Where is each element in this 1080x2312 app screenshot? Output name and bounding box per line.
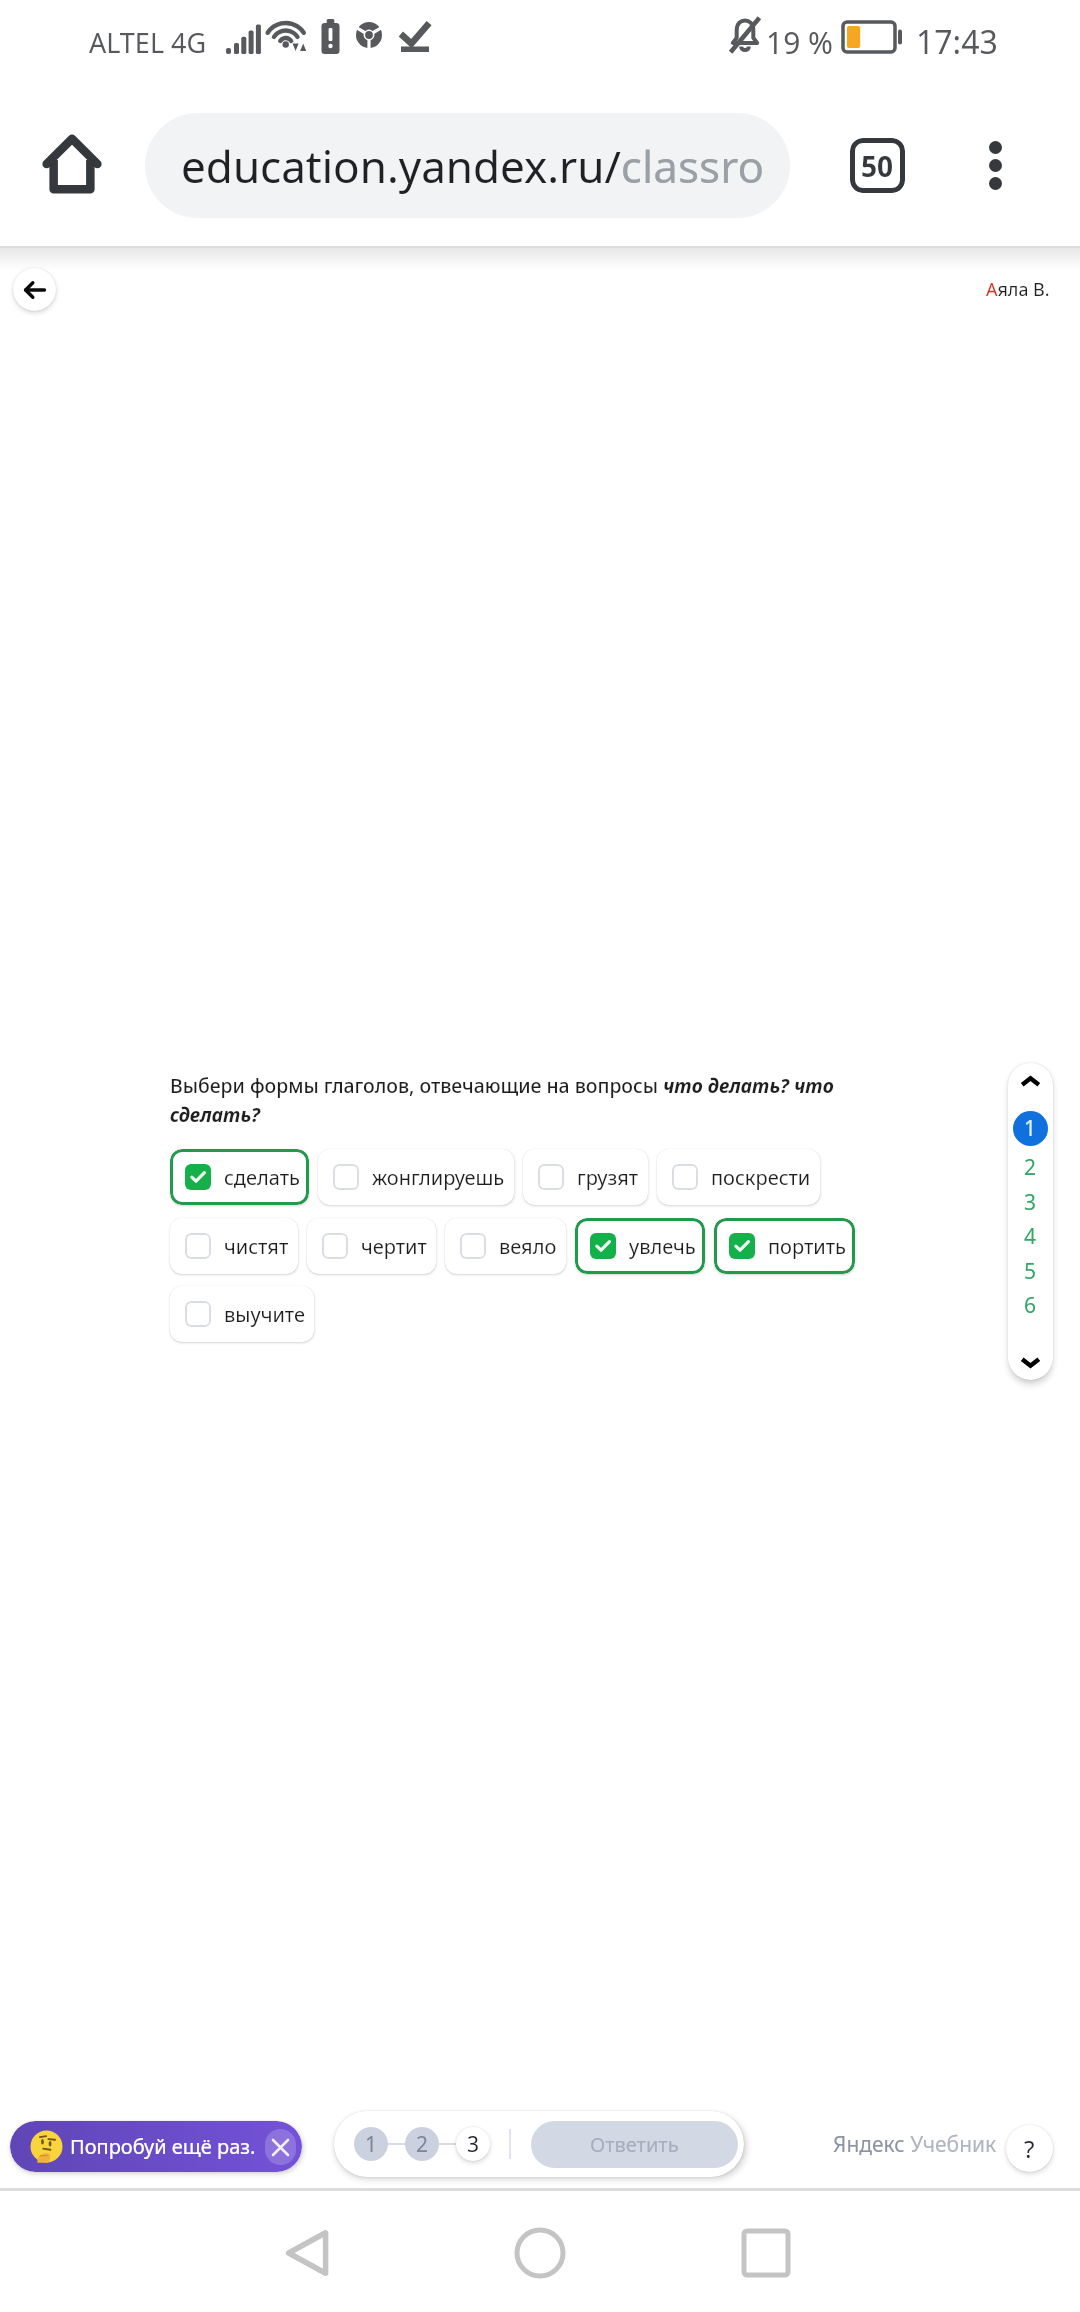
staticText: 1	[1024, 1114, 1037, 1143]
staticText: выучите	[224, 1301, 305, 1328]
button[interactable]: 1	[1013, 1111, 1048, 1146]
staticText: 1	[365, 2130, 378, 2159]
staticText: жонглируешь	[372, 1164, 505, 1191]
staticText: 3	[467, 2130, 480, 2159]
staticText: 6	[1024, 1291, 1037, 1320]
staticText: 3	[1024, 1188, 1037, 1217]
button[interactable]: грузят	[523, 1149, 648, 1205]
button[interactable]: 2	[1008, 1150, 1053, 1184]
staticText: Выбери формы глаголов, отвечающие на воп…	[170, 1072, 848, 1127]
button[interactable]: 4	[1008, 1219, 1053, 1253]
button[interactable]: education.yandex.ru/classro	[145, 113, 790, 218]
staticText: 4	[1024, 1222, 1037, 1251]
staticText: ALTEL 4G	[89, 24, 207, 61]
button[interactable]: 3	[1008, 1185, 1053, 1219]
staticText: education.yandex.ru/classro	[181, 136, 765, 196]
staticText: сделать	[224, 1164, 300, 1191]
staticText: портить	[768, 1233, 846, 1260]
staticText: 2	[1024, 1153, 1037, 1182]
button[interactable]: портить	[714, 1218, 855, 1274]
button[interactable]: Back	[13, 268, 56, 311]
button[interactable]: Scroll up	[1008, 1063, 1053, 1099]
button[interactable]: Recents	[706, 2194, 826, 2312]
button[interactable]: веяло	[445, 1218, 566, 1274]
button[interactable]: 6	[1008, 1288, 1053, 1322]
staticText: грузят	[577, 1164, 639, 1191]
button[interactable]: More options	[955, 125, 1035, 205]
staticText: 19 %	[766, 22, 834, 63]
staticText: увлечь	[629, 1233, 696, 1260]
staticText: ?	[1024, 2132, 1035, 2165]
staticText: Попробуй ещё раз.	[70, 2133, 256, 2160]
staticText: Аяла В.	[986, 277, 1050, 302]
staticText: чистят	[224, 1233, 289, 1260]
staticText: 50	[861, 147, 894, 185]
button[interactable]: Home	[480, 2194, 600, 2312]
button[interactable]: Tabs	[836, 124, 918, 206]
staticText: Яндекс Учебник	[833, 2130, 997, 2159]
button[interactable]: Ответить	[531, 2121, 738, 2168]
staticText: Ответить	[590, 2131, 679, 2158]
button[interactable]: увлечь	[575, 1218, 705, 1274]
staticText: поскрести	[711, 1164, 811, 1191]
button[interactable]: выучите	[170, 1286, 314, 1342]
staticText: 2	[416, 2130, 429, 2159]
button[interactable]: чистят	[170, 1218, 298, 1274]
button[interactable]: Back	[248, 2194, 368, 2312]
staticText: чертит	[361, 1233, 427, 1260]
button[interactable]: Попробуй ещё раз.	[10, 2121, 302, 2172]
button[interactable]: Help	[1006, 2125, 1053, 2172]
button[interactable]: 2	[405, 2127, 439, 2161]
staticText: 5	[1024, 1257, 1037, 1286]
button[interactable]: жонглируешь	[318, 1149, 514, 1205]
button[interactable]: Scroll down	[1008, 1344, 1053, 1380]
button[interactable]: Home	[30, 122, 114, 206]
staticText: 17:43	[916, 20, 998, 64]
button[interactable]: поскрести	[657, 1149, 820, 1205]
button[interactable]: Close	[265, 2129, 296, 2165]
button[interactable]: чертит	[307, 1218, 436, 1274]
button[interactable]: 3	[456, 2127, 490, 2161]
button[interactable]: 5	[1008, 1254, 1053, 1288]
button[interactable]: сделать	[170, 1149, 309, 1205]
staticText: веяло	[499, 1233, 557, 1260]
button[interactable]: 1	[354, 2127, 388, 2161]
